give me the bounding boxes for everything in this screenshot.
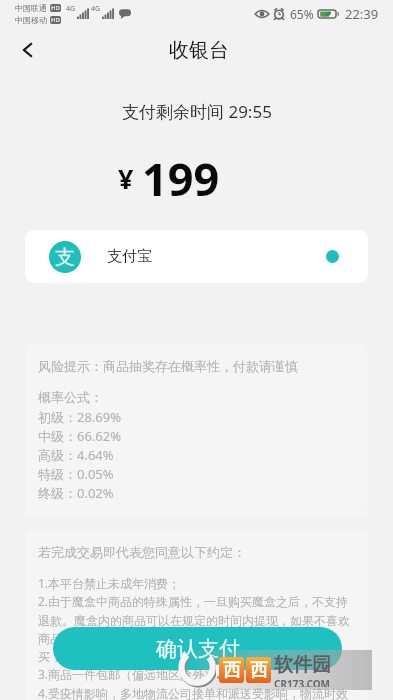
staticText: 高级：4.64% [38,446,114,464]
staticText: 4G [66,4,76,14]
staticText: 概率公式： [38,389,103,405]
staticText: 中国移动 [15,15,47,25]
staticText: 软件园 [274,653,331,677]
staticText: 中国联通 [15,3,47,13]
staticText: HD [51,16,60,24]
staticText: 西 [223,659,241,682]
staticText: 1.本平台禁止未成年消费； 2.由于魔盒中商品的特殊属性，一旦购买魔盒之后，不支… [38,575,355,700]
staticText: 65% [290,6,314,22]
staticText: 支 [55,245,75,270]
staticText: 若完成交易即代表您同意以下约定： [38,544,246,560]
staticText: 支付剩余时间 29:55 [122,100,272,123]
staticText: ¥ [118,160,134,197]
staticText: 初级：28.69% [38,408,122,426]
staticText: HD [51,4,60,12]
button[interactable]: 返回 [10,33,44,67]
button[interactable]: 支 [25,230,368,283]
staticText: 特级：0.05% [38,465,114,483]
staticText: 风险提示：商品抽奖存在概率性，付款请谨慎 [38,358,298,374]
staticText: 收银台 [169,38,229,63]
staticText: 确认支付 [156,636,240,662]
staticText: 4G [91,4,101,14]
staticText: 中级：66.62% [38,427,122,445]
staticText: 西 [250,659,268,682]
staticText: 199 [142,148,220,200]
staticText: 终级：0.02% [38,484,114,502]
staticText: 支付宝 [107,247,152,266]
button[interactable]: 确认支付 [53,627,342,670]
staticText: 22:39 [345,5,379,23]
staticText: CR173.COM [274,677,331,687]
